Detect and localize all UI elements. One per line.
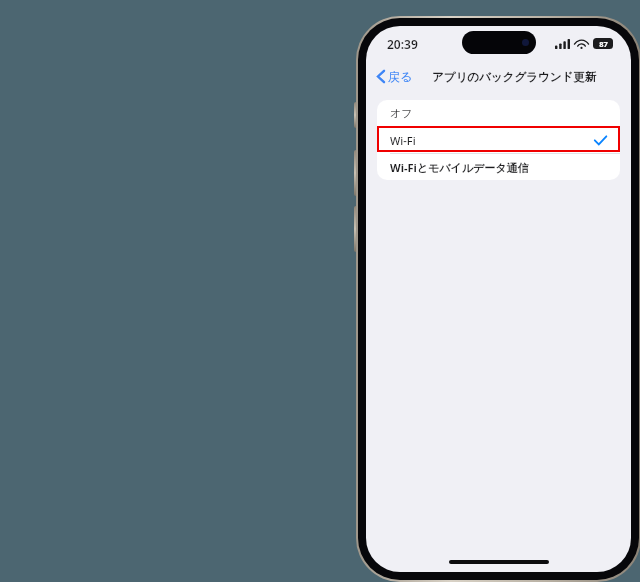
staticText: 20:39	[387, 36, 418, 52]
other: Selected	[594, 135, 607, 146]
staticText: アプリのバックグラウンド更新	[432, 70, 597, 84]
staticText: Wi-Fi	[390, 133, 416, 148]
button[interactable]: 戻る	[366, 66, 419, 87]
staticText: 87	[599, 39, 608, 49]
button[interactable]: Wi-Fi	[377, 127, 620, 153]
staticText: 戻る	[388, 69, 413, 84]
staticText: オフ	[390, 106, 413, 120]
button[interactable]: オフ	[377, 100, 620, 126]
button[interactable]: Wi-Fiとモバイルデータ通信	[377, 154, 620, 180]
staticText: Wi-Fiとモバイルデータ通信	[390, 160, 529, 175]
